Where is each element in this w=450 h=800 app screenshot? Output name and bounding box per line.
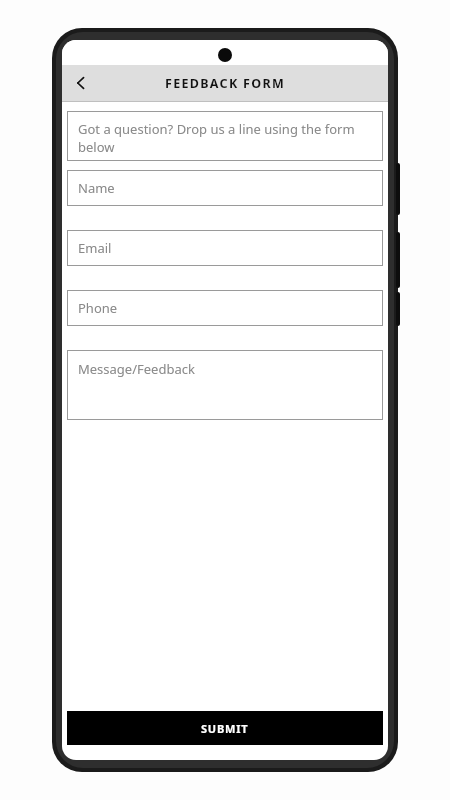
button[interactable]: Phone	[67, 290, 383, 326]
staticText: SUBMIT	[201, 721, 249, 736]
staticText: Phone	[78, 299, 118, 317]
staticText: Message/Feedback	[78, 360, 195, 378]
staticText: below	[78, 138, 115, 156]
staticText: Got a question? Drop us a line using the…	[78, 120, 355, 138]
staticText: FEEDBACK FORM	[165, 75, 285, 92]
button[interactable]: Back	[62, 65, 100, 101]
staticText: Email	[78, 239, 112, 257]
button[interactable]: Email	[67, 230, 383, 266]
button[interactable]: SUBMIT	[67, 711, 383, 745]
staticText: Name	[78, 179, 115, 197]
button[interactable]: Got a question? Drop us a line using the…	[67, 111, 383, 161]
button[interactable]: Name	[67, 170, 383, 206]
button[interactable]: Message/Feedback	[67, 350, 383, 420]
